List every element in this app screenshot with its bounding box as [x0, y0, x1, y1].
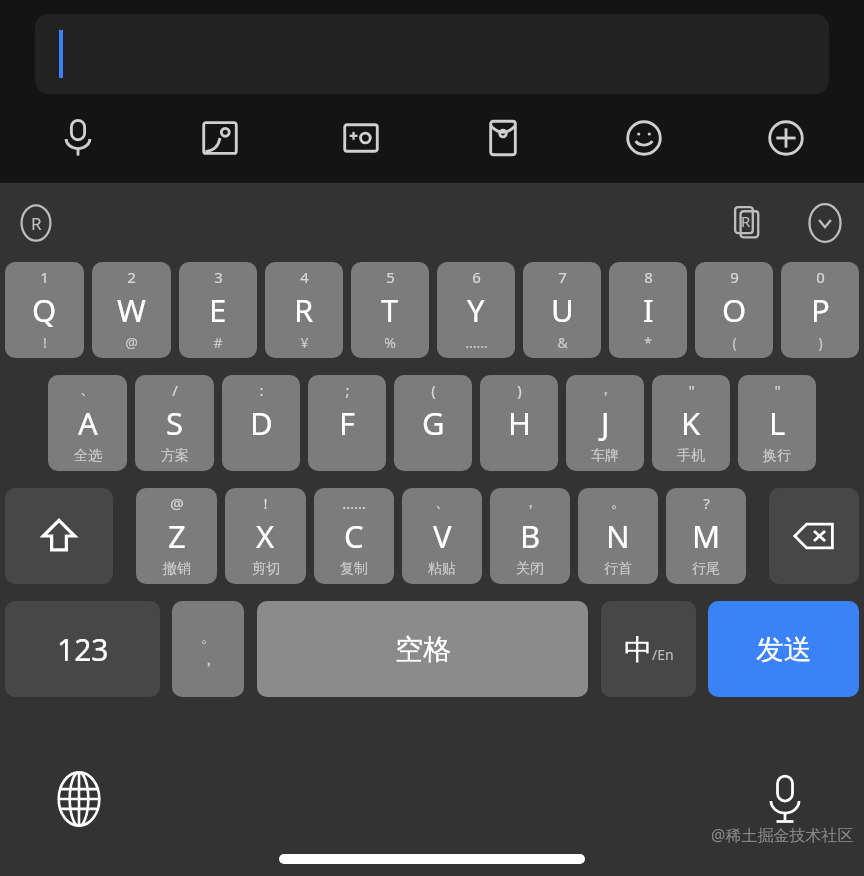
staticText: ，	[523, 493, 538, 512]
staticText: E	[209, 289, 227, 331]
staticText: %	[384, 333, 396, 352]
button[interactable]: 中	[601, 601, 696, 697]
button[interactable]: 8	[609, 262, 687, 358]
staticText: /En	[652, 645, 674, 664]
staticText: N	[606, 515, 630, 557]
staticText: R	[294, 289, 314, 331]
staticText: 8	[644, 267, 653, 287]
button[interactable]: Shift	[5, 488, 113, 584]
button[interactable]: Voice input	[50, 110, 106, 166]
staticText: T	[381, 289, 399, 331]
button[interactable]: Emoji	[616, 110, 672, 166]
button[interactable]: 0	[781, 262, 859, 358]
staticText: 。	[201, 628, 216, 647]
button[interactable]: ……	[314, 488, 394, 584]
button[interactable]: :	[222, 375, 300, 471]
staticText: L	[769, 402, 786, 444]
staticText: H	[508, 402, 531, 444]
button[interactable]: 3	[179, 262, 257, 358]
staticText: 车牌	[591, 447, 619, 465]
staticText: F	[339, 402, 356, 444]
staticText: C	[344, 515, 364, 557]
button[interactable]: ;	[308, 375, 386, 471]
staticText: &	[557, 333, 568, 352]
button[interactable]: 6	[437, 262, 515, 358]
staticText: 行首	[604, 560, 632, 578]
button[interactable]: "	[738, 375, 816, 471]
staticText: 全选	[74, 447, 102, 465]
button[interactable]: Red packet	[475, 110, 531, 166]
button[interactable]: 7	[523, 262, 601, 358]
staticText: Q	[32, 289, 57, 331]
staticText: 换行	[763, 447, 791, 465]
staticText: @稀土掘金技术社区	[711, 824, 854, 846]
button[interactable]: More	[758, 110, 814, 166]
button[interactable]: !	[225, 488, 306, 584]
button[interactable]: /	[135, 375, 214, 471]
staticText: !	[263, 493, 268, 513]
staticText: 剪切	[252, 560, 280, 578]
button[interactable]: "	[652, 375, 730, 471]
staticText: Y	[467, 289, 485, 331]
staticText: 3	[214, 267, 223, 287]
staticText: 1	[40, 267, 49, 287]
staticText: R	[741, 211, 751, 231]
staticText: "	[774, 380, 781, 400]
staticText: ;	[345, 380, 350, 400]
staticText: ?	[703, 493, 710, 513]
button[interactable]: Input method	[10, 197, 62, 249]
staticText: M	[692, 515, 721, 557]
staticText: /	[172, 380, 178, 400]
staticText: P	[811, 289, 830, 331]
button[interactable]: 1	[5, 262, 84, 358]
button[interactable]: 、	[48, 375, 127, 471]
staticText: B	[520, 515, 541, 557]
staticText: :	[259, 380, 264, 400]
button[interactable]: Sticker	[333, 110, 389, 166]
button[interactable]: )	[480, 375, 558, 471]
button[interactable]: Image	[192, 110, 248, 166]
staticText: (	[431, 380, 436, 400]
staticText: D	[250, 402, 273, 444]
staticText: 粘贴	[428, 560, 456, 578]
staticText: @	[170, 493, 184, 513]
button[interactable]: 9	[695, 262, 773, 358]
button[interactable]: Switch language	[48, 768, 110, 830]
staticText: 发送	[756, 632, 812, 667]
staticText: 行尾	[692, 560, 720, 578]
button[interactable]: 发送	[708, 601, 859, 697]
button[interactable]: Hide keyboard	[798, 196, 852, 250]
staticText: R	[31, 212, 42, 235]
staticText: K	[681, 402, 701, 444]
button[interactable]: 。	[172, 601, 244, 697]
button[interactable]: 、	[402, 488, 482, 584]
staticText: X	[256, 515, 275, 557]
button[interactable]: (	[394, 375, 472, 471]
button[interactable]: 2	[92, 262, 171, 358]
button[interactable]: @	[136, 488, 217, 584]
button[interactable]: ?	[666, 488, 746, 584]
staticText: 、	[435, 493, 450, 512]
button[interactable]: 5	[351, 262, 429, 358]
button[interactable]: ，	[490, 488, 570, 584]
button[interactable]: 4	[265, 262, 343, 358]
staticText: 撤销	[163, 560, 191, 578]
staticText: (	[732, 333, 737, 352]
button[interactable]: ，	[566, 375, 644, 471]
staticText: I	[643, 289, 654, 331]
button[interactable]: 123	[5, 601, 160, 697]
button[interactable]: Voice input	[754, 768, 816, 830]
staticText: O	[722, 289, 747, 331]
staticText: 0	[816, 267, 825, 287]
staticText: U	[551, 289, 574, 331]
staticText: 手机	[677, 447, 705, 465]
button[interactable]	[35, 14, 829, 94]
button[interactable]: 。	[578, 488, 658, 584]
button[interactable]: Clipboard	[722, 196, 776, 250]
button[interactable]: Backspace	[769, 488, 859, 584]
staticText: A	[78, 402, 98, 444]
staticText: ¥	[300, 333, 309, 352]
staticText: S	[166, 402, 184, 444]
button[interactable]: 空格	[257, 601, 588, 697]
staticText: "	[688, 380, 695, 400]
